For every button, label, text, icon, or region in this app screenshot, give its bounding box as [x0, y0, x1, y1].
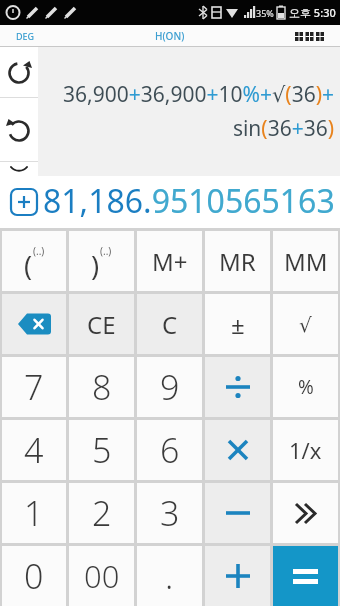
- staticText: 6: [160, 427, 180, 473]
- staticText: 7: [24, 364, 44, 410]
- staticText: 8: [92, 364, 112, 410]
- button[interactable]: MR: [205, 231, 270, 291]
- button[interactable]: [273, 546, 338, 606]
- staticText: 35%: [256, 7, 274, 19]
- button[interactable]: 1: [2, 483, 66, 543]
- staticText: ±: [231, 308, 245, 341]
- staticText: 00: [84, 555, 120, 597]
- staticText: 36,900+36,900+10%+√(36)+: [63, 80, 334, 109]
- button[interactable]: 1/x: [273, 420, 338, 480]
- button[interactable]: C: [137, 294, 202, 354]
- button[interactable]: 8: [69, 357, 134, 417]
- button[interactable]: [205, 420, 270, 480]
- button[interactable]: 3: [137, 483, 202, 543]
- button[interactable]: [295, 30, 324, 43]
- button[interactable]: [273, 483, 338, 543]
- staticText: √: [299, 313, 312, 336]
- staticText: CE: [87, 308, 116, 341]
- staticText: 5: [92, 427, 112, 473]
- staticText: 0: [24, 553, 44, 599]
- staticText: 1/x: [289, 435, 322, 465]
- button[interactable]: 2: [69, 483, 134, 543]
- button[interactable]: (: [2, 231, 66, 291]
- staticText: 오후 5:30: [289, 5, 336, 20]
- staticText: 9: [160, 364, 180, 410]
- button[interactable]: [205, 546, 270, 606]
- button[interactable]: MM: [273, 231, 338, 291]
- button[interactable]: √: [273, 294, 338, 354]
- button[interactable]: 6: [137, 420, 202, 480]
- button[interactable]: ): [69, 231, 134, 291]
- button[interactable]: [10, 188, 38, 216]
- staticText: MR: [219, 245, 256, 278]
- staticText: .: [165, 553, 174, 599]
- button[interactable]: [0, 162, 38, 176]
- button[interactable]: 7: [2, 357, 66, 417]
- button[interactable]: 5: [69, 420, 134, 480]
- button[interactable]: [205, 483, 270, 543]
- button[interactable]: H(ON): [155, 29, 185, 43]
- button[interactable]: CE: [69, 294, 134, 354]
- staticText: (: [24, 247, 33, 284]
- staticText: 81,186.9510565163: [43, 179, 335, 223]
- staticText: 1: [24, 490, 44, 536]
- button[interactable]: [205, 357, 270, 417]
- button[interactable]: 00: [69, 546, 134, 606]
- button[interactable]: .: [137, 546, 202, 606]
- staticText: M+: [152, 245, 188, 278]
- staticText: C: [162, 308, 178, 341]
- staticText: %: [298, 374, 314, 400]
- button[interactable]: 9: [137, 357, 202, 417]
- staticText: sin(36+36): [232, 114, 334, 143]
- button[interactable]: DEG: [16, 30, 35, 42]
- button[interactable]: %: [273, 357, 338, 417]
- staticText: 2: [92, 490, 112, 536]
- button[interactable]: 0: [2, 546, 66, 606]
- staticText: ): [91, 247, 100, 284]
- staticText: 4: [24, 427, 44, 473]
- button[interactable]: [0, 98, 38, 161]
- button[interactable]: 4: [2, 420, 66, 480]
- staticText: (..): [100, 244, 112, 258]
- button[interactable]: M+: [137, 231, 202, 291]
- button[interactable]: [0, 47, 38, 97]
- button[interactable]: ±: [205, 294, 270, 354]
- staticText: MM: [284, 245, 328, 278]
- button[interactable]: [2, 294, 66, 354]
- staticText: 3: [160, 490, 180, 536]
- staticText: (..): [33, 244, 45, 258]
